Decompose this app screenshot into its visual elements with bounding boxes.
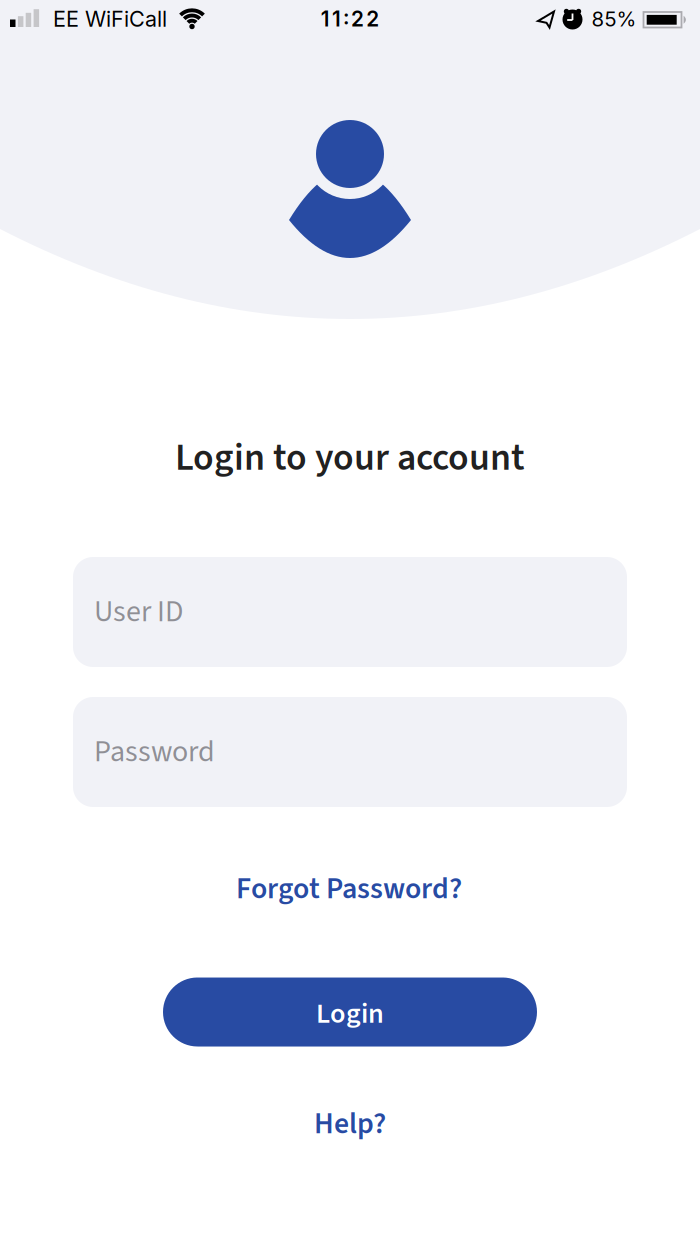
staticText: 11:22 [321, 6, 379, 32]
staticText: User ID [94, 591, 183, 633]
button[interactable]: Login [163, 977, 537, 1046]
staticText: Forgot Password? [236, 868, 462, 910]
staticText: Password [94, 731, 215, 773]
staticText: Help? [314, 1103, 386, 1145]
button[interactable]: Password [73, 697, 627, 807]
staticText: 85% [591, 7, 636, 31]
button[interactable]: Help? [314, 1103, 386, 1145]
staticText: EE WiFiCall [53, 6, 167, 32]
staticText: Login [316, 994, 384, 1034]
button[interactable]: User ID [73, 557, 627, 667]
staticText: Login to your account [175, 431, 525, 485]
button[interactable]: Forgot Password? [236, 868, 462, 910]
